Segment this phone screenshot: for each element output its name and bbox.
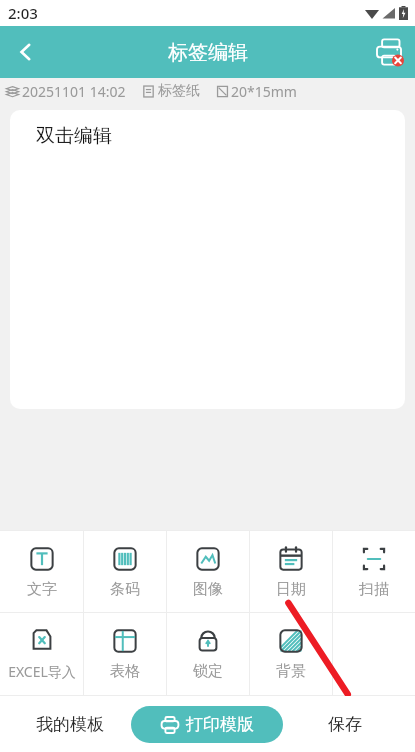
staticText: 条码 <box>110 580 140 599</box>
staticText: 20*15mm <box>231 82 297 101</box>
staticText: 保存 <box>328 714 362 735</box>
staticText: 标签编辑 <box>168 40 248 65</box>
staticText: 文字 <box>27 580 57 599</box>
staticText: 打印模版 <box>186 714 254 735</box>
button[interactable]: 背景 <box>250 613 332 695</box>
staticText: 我的模板 <box>36 714 104 735</box>
button[interactable]: 打印模版 <box>131 706 283 743</box>
staticText: 2:03 <box>8 3 38 23</box>
staticText: 双击编辑 <box>36 124 112 148</box>
button[interactable]: 条码 <box>84 531 166 612</box>
staticText: 图像 <box>193 580 223 599</box>
staticText: EXCEL导入 <box>8 662 76 681</box>
staticText: 锁定 <box>193 662 223 681</box>
staticText: 背景 <box>276 662 306 681</box>
button[interactable]: 锁定 <box>167 613 249 695</box>
button[interactable]: 双击编辑 <box>10 110 405 409</box>
button[interactable]: 日期 <box>250 531 332 612</box>
staticText: 扫描 <box>359 580 389 599</box>
button[interactable]: Printer disconnected <box>363 26 415 78</box>
button[interactable]: EXCEL导入 <box>0 613 83 695</box>
button[interactable]: 保存 <box>283 696 407 752</box>
button[interactable]: 扫描 <box>333 531 415 612</box>
staticText: 标签纸 <box>158 82 200 100</box>
button[interactable]: 我的模板 <box>8 696 131 752</box>
staticText: 表格 <box>110 662 140 681</box>
button[interactable]: 图像 <box>167 531 249 612</box>
button[interactable]: 文字 <box>0 531 83 612</box>
staticText: 20251101 14:02 <box>22 82 126 101</box>
button[interactable]: 表格 <box>84 613 166 695</box>
staticText: 日期 <box>276 580 306 599</box>
button[interactable]: Back <box>0 26 52 78</box>
